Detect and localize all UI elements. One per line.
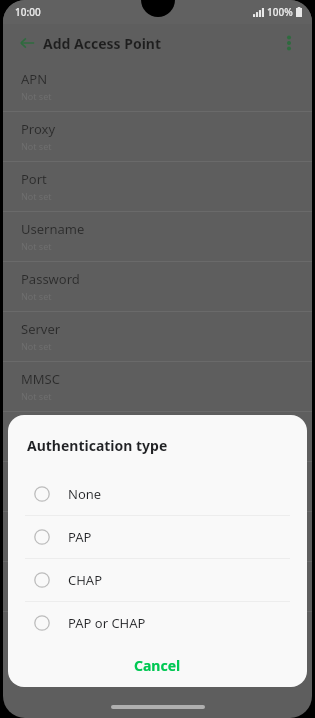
staticText: Not set bbox=[21, 540, 52, 552]
staticText: Not set bbox=[21, 140, 52, 152]
staticText: Proxy bbox=[21, 120, 56, 138]
staticText: Authentication type bbox=[27, 436, 168, 455]
button[interactable]: None bbox=[8, 473, 307, 515]
button[interactable]: Password bbox=[3, 262, 312, 312]
staticText: Not set bbox=[21, 290, 52, 302]
staticText: Port bbox=[21, 170, 47, 188]
staticText: None bbox=[68, 485, 102, 503]
staticText: MNC bbox=[21, 570, 51, 588]
staticText: MMS port bbox=[21, 470, 82, 488]
staticText: 100% bbox=[267, 5, 293, 19]
button[interactable]: Server bbox=[3, 312, 312, 362]
staticText: 10:00 bbox=[15, 5, 41, 19]
staticText: Username bbox=[21, 220, 85, 238]
button[interactable]: MMSC bbox=[3, 362, 312, 412]
button[interactable]: PAP or CHAP bbox=[8, 602, 307, 644]
staticText: PAP bbox=[68, 528, 92, 546]
button[interactable]: MNC bbox=[3, 562, 312, 612]
button[interactable]: Cancel bbox=[8, 644, 307, 687]
button[interactable]: MCC bbox=[3, 512, 312, 562]
staticText: Password bbox=[21, 270, 80, 288]
button[interactable]: MMS proxy bbox=[3, 412, 312, 462]
staticText: Not set bbox=[21, 490, 52, 502]
staticText: Not set bbox=[21, 90, 52, 102]
staticText: Not set bbox=[21, 240, 52, 252]
staticText: Not set bbox=[21, 340, 52, 352]
staticText: MCC bbox=[21, 520, 49, 538]
button[interactable]: PAP bbox=[8, 516, 307, 558]
staticText: Server bbox=[21, 320, 61, 338]
staticText: Not set bbox=[21, 190, 52, 202]
button[interactable]: MMS port bbox=[3, 462, 312, 512]
button[interactable]: Port bbox=[3, 162, 312, 212]
staticText: Not set bbox=[21, 440, 52, 452]
button[interactable]: Proxy bbox=[3, 112, 312, 162]
button[interactable]: Back bbox=[11, 27, 43, 59]
staticText: CHAP bbox=[68, 571, 103, 589]
button[interactable]: CHAP bbox=[8, 559, 307, 601]
staticText: PAP or CHAP bbox=[68, 614, 146, 632]
button[interactable]: More options bbox=[274, 28, 304, 58]
staticText: APN bbox=[21, 70, 48, 88]
staticText: Not set bbox=[21, 590, 52, 602]
button[interactable]: Username bbox=[3, 212, 312, 262]
staticText: Cancel bbox=[134, 656, 181, 675]
button[interactable]: APN bbox=[3, 62, 312, 112]
staticText: Add Access Point bbox=[43, 34, 162, 53]
staticText: Not set bbox=[21, 390, 52, 402]
staticText: MMSC bbox=[21, 370, 60, 388]
